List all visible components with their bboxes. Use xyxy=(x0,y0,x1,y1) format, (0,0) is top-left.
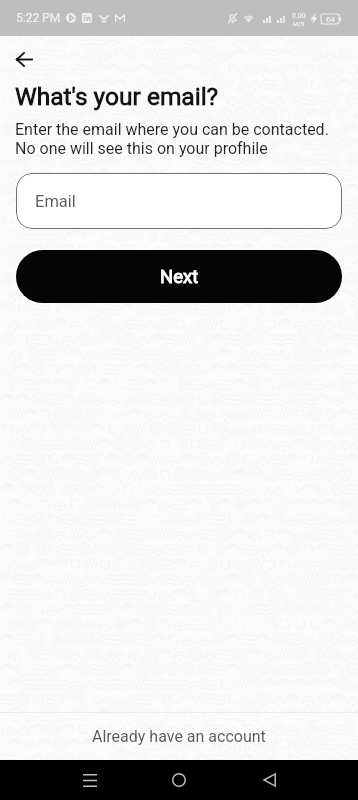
button[interactable]: Email xyxy=(16,173,342,229)
staticText: Next xyxy=(160,266,199,288)
button[interactable]: Recent apps xyxy=(68,760,112,800)
staticText: Enter the email where you can be contact… xyxy=(15,120,329,158)
staticText: Email xyxy=(35,192,76,211)
button[interactable]: Back xyxy=(2,37,46,81)
staticText: Already have an account xyxy=(92,727,266,746)
staticText: M/S xyxy=(293,20,305,27)
button[interactable]: Back xyxy=(247,760,291,800)
staticText: 0.00 xyxy=(292,12,306,20)
staticText: 5:22 PM xyxy=(16,11,61,25)
button[interactable]: Next xyxy=(16,250,342,303)
button[interactable]: Home xyxy=(157,760,201,800)
button[interactable]: Already have an account xyxy=(0,713,358,760)
staticText: What's your email? xyxy=(15,82,219,111)
staticText: 64 xyxy=(326,15,335,24)
